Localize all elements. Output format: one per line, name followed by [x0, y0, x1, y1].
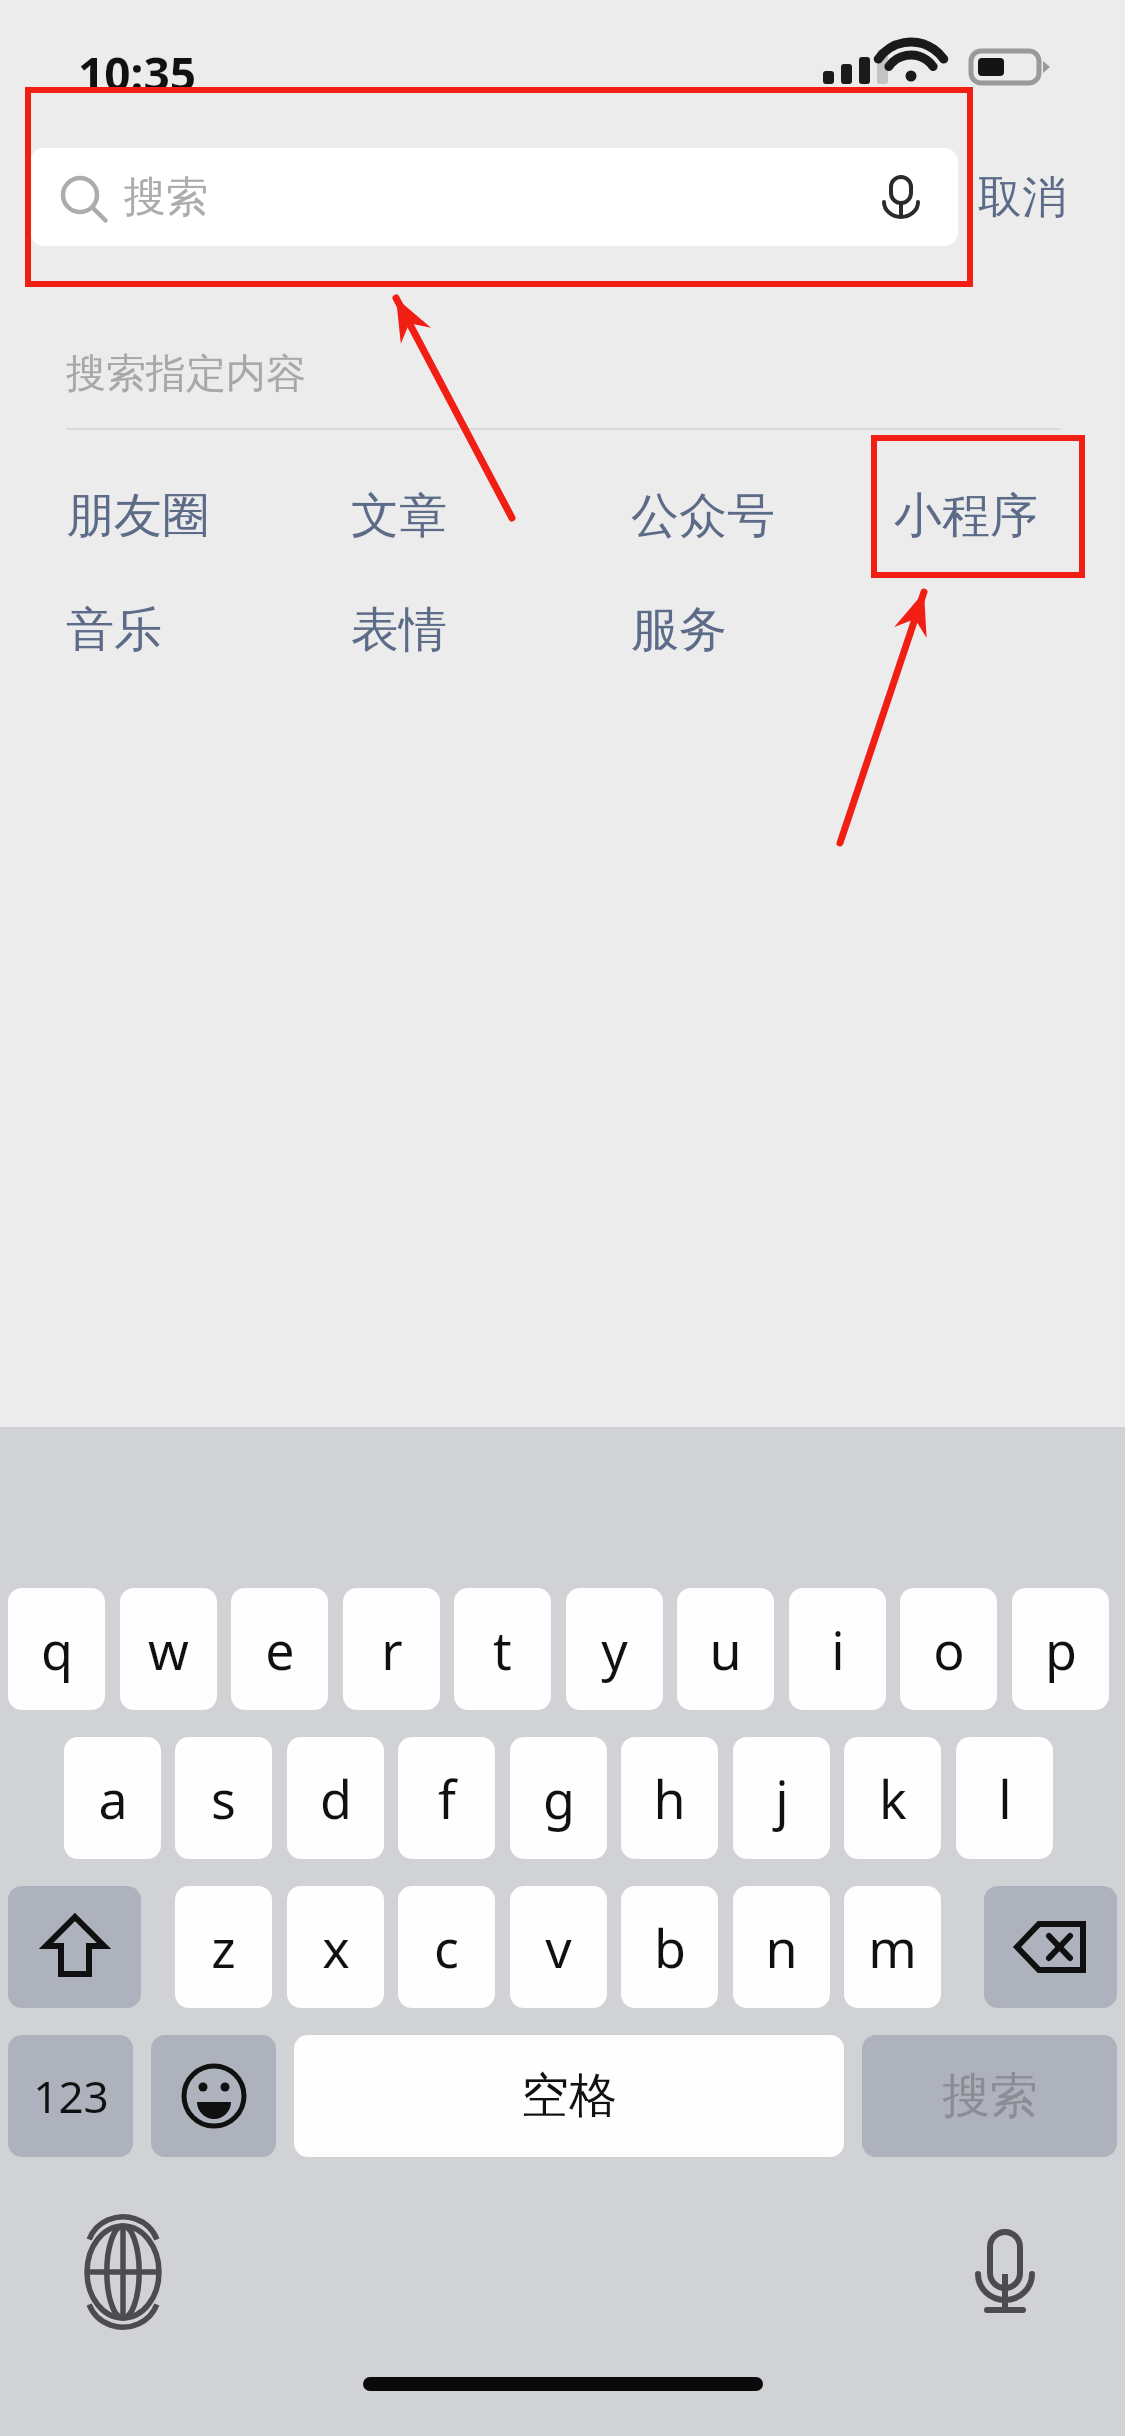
staticText: a: [98, 1763, 128, 1834]
button[interactable]: b: [621, 1886, 718, 2008]
staticText: t: [493, 1614, 512, 1685]
staticText: e: [265, 1614, 295, 1685]
button[interactable]: z: [175, 1886, 272, 2008]
staticText: p: [1045, 1614, 1077, 1685]
staticText: z: [211, 1912, 236, 1983]
button[interactable]: 搜索: [862, 2035, 1117, 2157]
button[interactable]: y: [566, 1588, 663, 1710]
button[interactable]: o: [900, 1588, 997, 1710]
button[interactable]: 搜索: [30, 148, 958, 246]
staticText: j: [775, 1763, 789, 1834]
button[interactable]: 服务: [625, 594, 733, 666]
staticText: w: [148, 1614, 189, 1685]
staticText: 搜索: [124, 171, 208, 224]
staticText: f: [438, 1763, 456, 1834]
button[interactable]: 表情: [345, 594, 453, 666]
button[interactable]: t: [454, 1588, 551, 1710]
button[interactable]: f: [398, 1737, 495, 1859]
button[interactable]: m: [844, 1886, 941, 2008]
staticText: n: [765, 1912, 798, 1983]
staticText: m: [868, 1912, 917, 1983]
staticText: 朋友圈: [66, 486, 210, 546]
button[interactable]: x: [287, 1886, 384, 2008]
staticText: 音乐: [66, 600, 162, 660]
staticText: 123: [33, 2066, 109, 2126]
staticText: q: [41, 1614, 73, 1685]
staticText: 10:35: [78, 42, 197, 105]
staticText: b: [654, 1912, 686, 1983]
staticText: i: [831, 1614, 845, 1685]
button[interactable]: 文章: [345, 480, 453, 552]
button[interactable]: w: [120, 1588, 217, 1710]
button[interactable]: 公众号: [625, 480, 781, 552]
button[interactable]: h: [621, 1737, 718, 1859]
staticText: c: [434, 1912, 459, 1983]
button[interactable]: 取消: [978, 148, 1066, 246]
button[interactable]: d: [287, 1737, 384, 1859]
staticText: 取消: [978, 170, 1066, 225]
staticText: 小程序: [894, 486, 1038, 546]
button[interactable]: g: [510, 1737, 607, 1859]
button[interactable]: c: [398, 1886, 495, 2008]
button[interactable]: k: [844, 1737, 941, 1859]
staticText: 搜索: [942, 2066, 1038, 2126]
staticText: h: [653, 1763, 686, 1834]
staticText: g: [543, 1763, 575, 1834]
button[interactable]: e: [231, 1588, 328, 1710]
button[interactable]: p: [1012, 1588, 1109, 1710]
staticText: 搜索指定内容: [66, 348, 306, 398]
button[interactable]: Emoji: [151, 2035, 276, 2157]
staticText: 公众号: [631, 486, 775, 546]
button[interactable]: l: [956, 1737, 1053, 1859]
button[interactable]: r: [343, 1588, 440, 1710]
staticText: r: [381, 1614, 403, 1685]
staticText: y: [601, 1614, 628, 1685]
button[interactable]: 朋友圈: [60, 480, 216, 552]
button[interactable]: Shift: [8, 1886, 141, 2008]
button[interactable]: Voice search: [872, 168, 930, 226]
button[interactable]: u: [677, 1588, 774, 1710]
button[interactable]: s: [175, 1737, 272, 1859]
staticText: 服务: [631, 600, 727, 660]
button[interactable]: Backspace: [984, 1886, 1117, 2008]
staticText: d: [320, 1763, 352, 1834]
staticText: 空格: [521, 2066, 617, 2126]
staticText: 文章: [351, 486, 447, 546]
button[interactable]: n: [733, 1886, 830, 2008]
staticText: 表情: [351, 600, 447, 660]
staticText: v: [545, 1912, 572, 1983]
button[interactable]: Dictation: [950, 2217, 1060, 2327]
button[interactable]: v: [510, 1886, 607, 2008]
staticText: l: [998, 1763, 1012, 1834]
button[interactable]: i: [789, 1588, 886, 1710]
staticText: o: [933, 1614, 965, 1685]
button[interactable]: j: [733, 1737, 830, 1859]
staticText: k: [879, 1763, 907, 1834]
button[interactable]: 音乐: [60, 594, 168, 666]
staticText: s: [211, 1763, 236, 1834]
button[interactable]: q: [8, 1588, 105, 1710]
button[interactable]: 空格: [294, 2035, 844, 2157]
staticText: x: [322, 1912, 350, 1983]
button[interactable]: a: [64, 1737, 161, 1859]
staticText: u: [709, 1614, 742, 1685]
button[interactable]: 123: [8, 2035, 133, 2157]
button[interactable]: Switch keyboard: [68, 2217, 178, 2327]
button[interactable]: 小程序: [888, 480, 1044, 552]
